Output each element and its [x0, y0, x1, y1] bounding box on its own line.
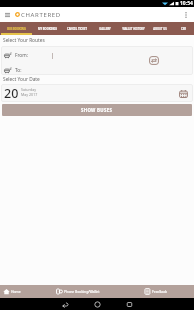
staticText: BUS BOOKING: [7, 27, 26, 31]
staticText: From:: [15, 52, 29, 59]
staticText: CSR: [181, 27, 186, 31]
button[interactable]: CANCEL TICKET: [62, 22, 91, 35]
button[interactable]: CSR: [172, 22, 194, 35]
button[interactable]: Feedback: [141, 285, 194, 298]
staticText: ABOUT US: [153, 27, 167, 31]
button[interactable]: Open navigation menu: [2, 10, 12, 20]
button[interactable]: MY BOOKINGS: [32, 22, 62, 35]
staticText: Saturday: [21, 87, 36, 92]
staticText: SHOW BUSES: [81, 107, 113, 113]
staticText: Feedback: [152, 289, 168, 294]
button[interactable]: BUS BOOKING: [0, 22, 32, 35]
staticText: Home: [11, 289, 21, 294]
button[interactable]: Home: [0, 285, 53, 298]
staticText: To:: [15, 67, 22, 74]
staticText: Select Your Date: [3, 76, 40, 83]
button[interactable]: Home: [89, 298, 105, 310]
button[interactable]: More options: [180, 9, 191, 20]
staticText: Select Your Routes: [3, 37, 45, 44]
staticText: 10:54: [180, 0, 193, 7]
staticText: 20: [4, 85, 19, 102]
button[interactable]: GALLERY: [91, 22, 119, 35]
staticText: MY BOOKINGS: [38, 27, 57, 31]
staticText: Phone Booking/Wallet: [64, 289, 100, 294]
button[interactable]: Swap from and to: [148, 55, 159, 66]
button[interactable]: Recents: [121, 298, 137, 310]
staticText: GALLERY: [99, 27, 111, 31]
button[interactable]: SHOW BUSES: [2, 104, 192, 116]
staticText: WALLET HISTORY: [122, 27, 145, 31]
button[interactable]: WALLET HISTORY: [119, 22, 147, 35]
button[interactable]: Phone Booking/Wallet: [53, 285, 141, 298]
button[interactable]: ABOUT US: [147, 22, 172, 35]
button[interactable]: Back: [57, 298, 73, 310]
button[interactable]: Choose date: [178, 88, 189, 99]
staticText: CANCEL TICKET: [67, 27, 87, 31]
staticText: May 2017: [21, 92, 38, 97]
staticText: CHARTERED: [21, 11, 61, 19]
